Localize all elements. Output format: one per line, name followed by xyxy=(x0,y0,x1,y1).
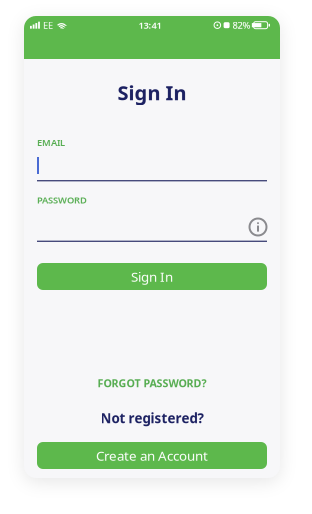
button[interactable]: Create an Account xyxy=(37,442,267,469)
staticText: 82% xyxy=(233,19,251,31)
staticText: Sign In xyxy=(131,268,173,285)
staticText: FORGOT PASSWORD? xyxy=(97,376,206,390)
staticText: Not registered? xyxy=(100,409,203,427)
staticText: EMAIL xyxy=(37,136,65,149)
button[interactable] xyxy=(249,218,267,236)
staticText: 13:41 xyxy=(138,19,161,31)
staticText: Sign In xyxy=(117,79,186,106)
button[interactable]: FORGOT PASSWORD? xyxy=(97,376,206,390)
staticText: Create an Account xyxy=(96,447,208,464)
button[interactable]: Sign In xyxy=(37,263,267,290)
staticText: PASSWORD xyxy=(37,194,87,206)
staticText: EE xyxy=(43,19,53,31)
